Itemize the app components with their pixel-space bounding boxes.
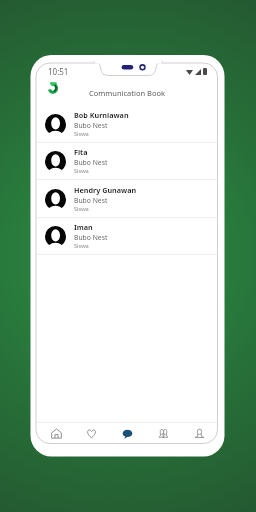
staticText: Siswa bbox=[74, 205, 89, 213]
staticText: Iman bbox=[74, 222, 93, 232]
button[interactable]: Groups bbox=[145, 423, 181, 444]
button[interactable]: Favorites bbox=[74, 423, 109, 444]
button[interactable]: Hendry Gunawan bbox=[36, 181, 218, 218]
staticText: Communication Book bbox=[89, 88, 166, 98]
staticText: 10:51 bbox=[48, 66, 69, 77]
button[interactable]: Home bbox=[39, 423, 74, 444]
button[interactable]: Profile bbox=[181, 423, 217, 444]
button[interactable]: Bob Kurniawan bbox=[36, 106, 218, 143]
staticText: Fita bbox=[74, 147, 88, 157]
button[interactable]: Messages bbox=[109, 423, 145, 444]
button[interactable]: Iman bbox=[36, 218, 218, 255]
staticText: Bubo Nest bbox=[74, 196, 108, 205]
staticText: Hendry Gunawan bbox=[74, 185, 137, 195]
staticText: Siswa bbox=[74, 167, 89, 175]
staticText: Bob Kurniawan bbox=[74, 110, 129, 120]
staticText: Siswa bbox=[74, 242, 89, 250]
staticText: Bubo Nest bbox=[74, 121, 108, 130]
staticText: Siswa bbox=[74, 130, 89, 138]
staticText: Bubo Nest bbox=[74, 158, 108, 167]
button[interactable]: Fita bbox=[36, 143, 218, 180]
staticText: Bubo Nest bbox=[74, 233, 108, 242]
